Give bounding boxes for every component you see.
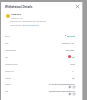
staticText: 2023-06-30 11:07: [62, 42, 75, 44]
button[interactable]: TxID: [5, 88, 75, 95]
button[interactable]: Copy: [68, 86, 71, 88]
staticText: Network fee: [5, 70, 14, 72]
button[interactable]: Copy: [68, 93, 71, 95]
staticText: Completed: [67, 35, 75, 37]
staticText: Address: [5, 83, 11, 85]
staticText: Completed: [11, 13, 21, 15]
staticText: TCVKdYuHs7mYmzo8xQRtE9hD2FTAj: [48, 83, 75, 85]
staticText: 194.42: [70, 63, 75, 65]
staticText: Please note that you will keep receiving…: [10, 20, 47, 22]
button[interactable]: View more on blockchain: [22, 24, 39, 26]
staticText: Withdrawal Details: [5, 5, 33, 9]
staticText: Spot Wallet: [66, 49, 75, 51]
button[interactable]: Withdraw wallet: [5, 46, 75, 53]
staticText: TRX: [72, 56, 75, 58]
staticText: until completed.: [10, 24, 22, 26]
staticText: Date: [5, 42, 9, 44]
staticText: 1.1: [72, 70, 75, 72]
staticText: 2023-06-30 11:07: [11, 17, 23, 19]
staticText: Withdraw amount: [5, 63, 18, 65]
button[interactable]: Date: [5, 39, 75, 46]
button[interactable]: Address: [5, 81, 75, 88]
staticText: TRX: [72, 77, 75, 79]
staticText: Withdraw wallet: [5, 49, 17, 51]
button[interactable]: Network: [5, 74, 75, 81]
button[interactable]: Close: [75, 4, 80, 9]
staticText: Coin: [5, 56, 9, 58]
staticText: TxID: [5, 90, 9, 92]
button[interactable]: Status: [5, 32, 75, 39]
staticText: Status: [5, 35, 10, 37]
button[interactable]: Open in explorer: [72, 86, 75, 88]
staticText: a3b4c5d6e7f8091a2b3c4d5e6f70819: [48, 90, 75, 92]
staticText: Network: [5, 77, 12, 79]
button[interactable]: Open in explorer: [72, 93, 75, 95]
button[interactable]: Withdraw amount: [5, 60, 75, 67]
button[interactable]: Coin: [5, 53, 75, 60]
button[interactable]: Network fee: [5, 67, 75, 74]
